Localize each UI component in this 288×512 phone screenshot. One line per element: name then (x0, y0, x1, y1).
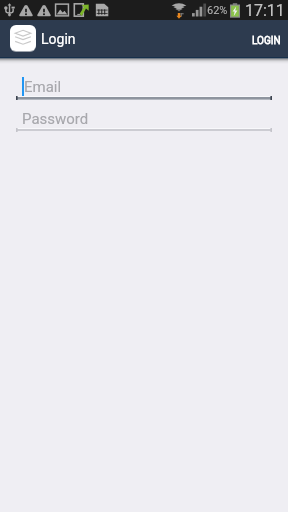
staticText: LOGIN (252, 35, 281, 47)
button[interactable]: Password (16, 104, 272, 134)
staticText: 62% (207, 4, 228, 17)
button[interactable]: LOGIN (251, 26, 282, 52)
button[interactable]: Email (16, 72, 272, 102)
staticText: 17:11 (245, 1, 285, 20)
button[interactable]: App icon (10, 25, 36, 52)
staticText: Login (41, 31, 76, 47)
staticText: Email (24, 78, 62, 96)
staticText: Password (22, 110, 89, 128)
